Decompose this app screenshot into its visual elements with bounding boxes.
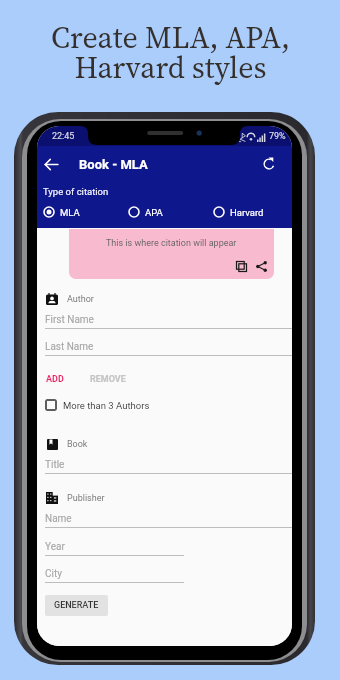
button[interactable]: Refresh bbox=[255, 150, 283, 178]
button[interactable]: MLA bbox=[42, 204, 81, 220]
staticText: Publisher bbox=[67, 493, 105, 504]
staticText: 79% bbox=[269, 131, 286, 142]
button[interactable]: Share citation bbox=[253, 258, 270, 275]
staticText: Author bbox=[67, 294, 94, 305]
button[interactable]: Back bbox=[37, 150, 65, 178]
staticText: First Name bbox=[45, 314, 94, 326]
button[interactable]: Copy citation bbox=[233, 258, 250, 275]
staticText: Harvard styles bbox=[74, 47, 267, 88]
button[interactable]: GENERATE bbox=[45, 595, 108, 616]
staticText: Harvard bbox=[230, 207, 264, 218]
staticText: Title bbox=[45, 459, 65, 471]
staticText: 22:45 bbox=[52, 131, 75, 142]
staticText: Year bbox=[45, 541, 65, 553]
button[interactable]: REMOVE bbox=[87, 372, 129, 387]
staticText: City bbox=[45, 568, 62, 580]
staticText: APA bbox=[145, 207, 163, 218]
staticText: ADD bbox=[46, 374, 64, 385]
staticText: MLA bbox=[60, 207, 80, 218]
staticText: Name bbox=[45, 513, 72, 525]
staticText: This is where citation will appear bbox=[106, 238, 237, 249]
staticText: Type of citation bbox=[43, 186, 109, 197]
button[interactable]: Harvard bbox=[212, 204, 265, 220]
button[interactable]: ADD bbox=[43, 372, 67, 387]
staticText: Book bbox=[67, 439, 88, 450]
staticText: Last Name bbox=[45, 341, 94, 353]
button[interactable]: APA bbox=[127, 204, 164, 220]
staticText: GENERATE bbox=[54, 600, 99, 611]
staticText: More than 3 Authors bbox=[63, 400, 150, 411]
staticText: Create MLA, APA, bbox=[51, 17, 290, 58]
staticText: REMOVE bbox=[90, 374, 126, 385]
staticText: Book - MLA bbox=[79, 157, 148, 172]
button[interactable]: More than 3 Authors bbox=[45, 396, 150, 414]
